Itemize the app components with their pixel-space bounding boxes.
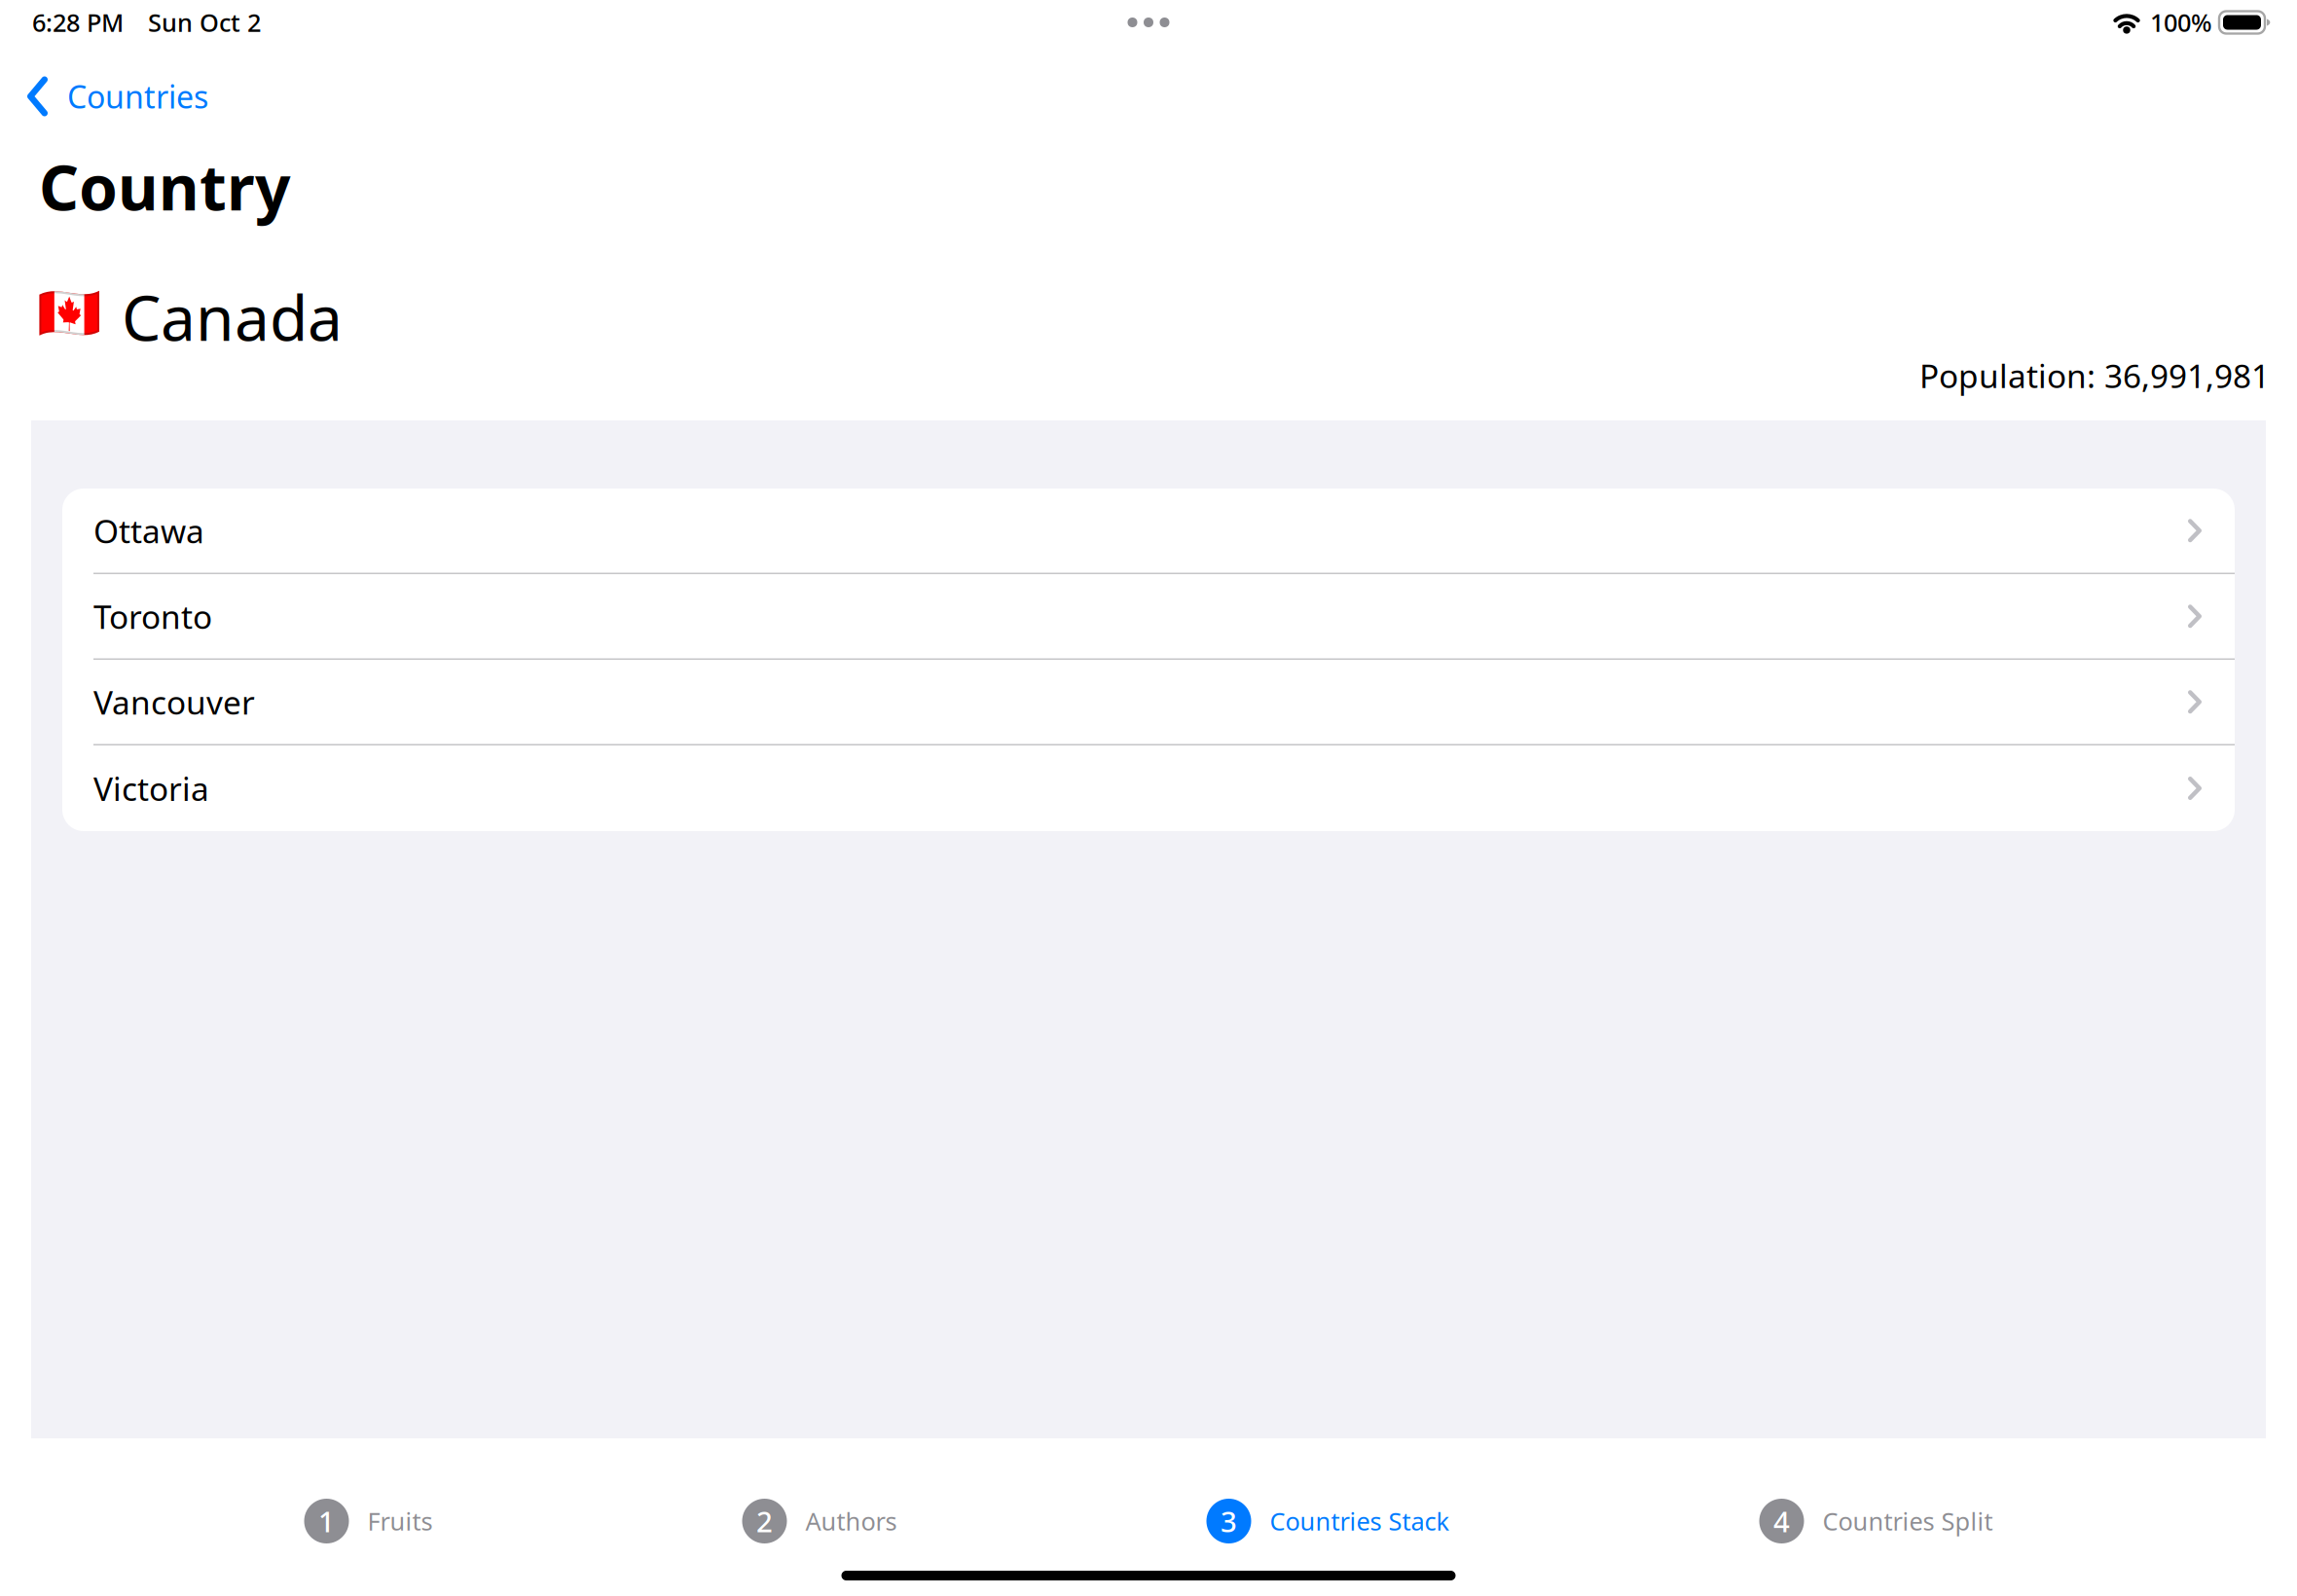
staticText: Ottawa — [93, 509, 204, 552]
staticText: 100% — [2150, 6, 2212, 39]
staticText: Population: 36,991,981 — [1919, 354, 2270, 397]
staticText: Country — [39, 145, 291, 228]
staticText: Victoria — [93, 767, 209, 810]
staticText: 🇨🇦 — [37, 283, 101, 342]
staticText: Countries — [67, 76, 208, 117]
button[interactable]: Multitasking Controls — [1128, 18, 1169, 27]
button[interactable]: Countries — [0, 45, 224, 148]
button[interactable]: 2 — [742, 1499, 897, 1543]
staticText: 2 — [756, 1502, 773, 1540]
button[interactable]: Vancouver — [62, 660, 2235, 745]
button[interactable]: Ottawa — [62, 489, 2235, 574]
staticText: Countries Stack — [1270, 1505, 1450, 1537]
staticText: 4 — [1773, 1502, 1790, 1540]
staticText: Canada — [122, 275, 343, 358]
staticText: 6:28 PM — [32, 6, 124, 39]
staticText: Sun Oct 2 — [148, 6, 261, 39]
button[interactable]: 1 — [304, 1499, 433, 1543]
staticText: Toronto — [93, 595, 212, 638]
button[interactable]: Toronto — [62, 574, 2235, 660]
staticText: Fruits — [367, 1505, 433, 1537]
staticText: 3 — [1221, 1502, 1237, 1540]
staticText: Authors — [805, 1505, 897, 1537]
button[interactable]: 4 — [1759, 1499, 1993, 1543]
staticText: Countries Split — [1823, 1505, 1993, 1537]
staticText: Vancouver — [93, 680, 255, 723]
button[interactable]: Victoria — [62, 745, 2235, 831]
staticText: 1 — [318, 1502, 335, 1540]
button[interactable]: 3 — [1206, 1499, 1450, 1543]
